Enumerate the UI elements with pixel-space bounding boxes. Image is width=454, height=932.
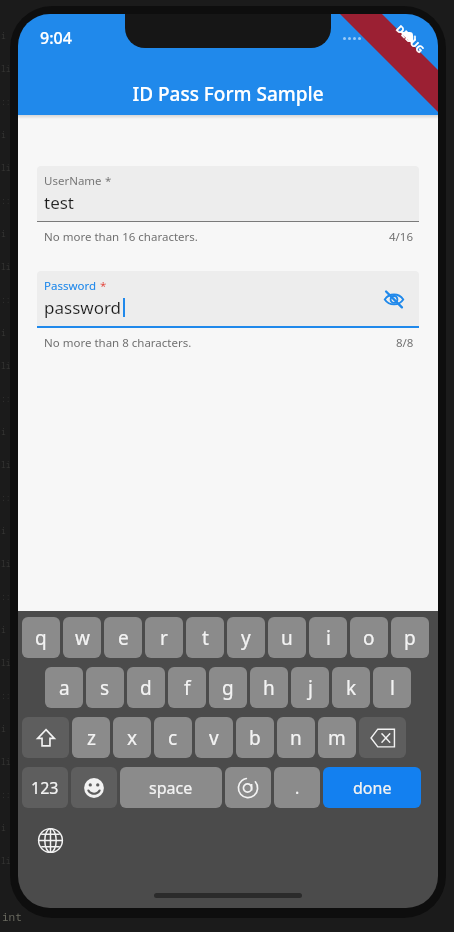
button[interactable]: d bbox=[127, 667, 165, 708]
staticText: i bbox=[1, 30, 6, 41]
staticText: DEBUG bbox=[393, 22, 428, 56]
staticText: Password bbox=[44, 278, 97, 294]
staticText: int bbox=[2, 909, 22, 924]
staticText: . bbox=[295, 777, 300, 799]
staticText: f bbox=[184, 675, 191, 701]
button[interactable]: b bbox=[236, 717, 274, 758]
button[interactable]: s bbox=[86, 667, 124, 708]
button[interactable]: h bbox=[250, 667, 288, 708]
staticText: i bbox=[1, 228, 6, 239]
button[interactable]: space bbox=[120, 767, 222, 808]
staticText: t bbox=[202, 625, 209, 651]
staticText: 8/8 bbox=[396, 335, 414, 351]
staticText: li bbox=[1, 162, 11, 173]
button[interactable]: r bbox=[145, 617, 183, 658]
staticText: d bbox=[140, 675, 152, 701]
staticText: :: bbox=[1, 195, 11, 206]
button[interactable]: Emoji bbox=[71, 767, 117, 808]
button[interactable]: At sign bbox=[225, 767, 271, 808]
button[interactable]: 123 bbox=[22, 767, 68, 808]
staticText: space bbox=[149, 777, 193, 799]
staticText: y bbox=[241, 625, 251, 651]
button[interactable]: x bbox=[113, 717, 151, 758]
button[interactable]: Hide password bbox=[379, 284, 409, 314]
button[interactable]: c bbox=[154, 717, 192, 758]
staticText: i bbox=[1, 327, 6, 338]
staticText: g bbox=[222, 675, 234, 701]
staticText: :: bbox=[1, 690, 11, 701]
staticText: b bbox=[249, 725, 261, 751]
button[interactable]: Shift bbox=[22, 717, 69, 758]
button[interactable]: done bbox=[323, 767, 421, 808]
staticText: :: bbox=[1, 789, 11, 800]
staticText: test bbox=[44, 191, 75, 214]
staticText: ID Pass Form Sample bbox=[132, 81, 324, 107]
staticText: li bbox=[1, 657, 11, 668]
staticText: i bbox=[1, 723, 6, 734]
staticText: o bbox=[363, 625, 375, 651]
staticText: li bbox=[1, 261, 11, 272]
staticText: i bbox=[1, 426, 6, 437]
staticText: :: bbox=[1, 591, 11, 602]
staticText: x bbox=[127, 725, 138, 751]
button[interactable]: n bbox=[277, 717, 315, 758]
staticText: i bbox=[1, 525, 6, 536]
staticText: s bbox=[100, 675, 110, 701]
staticText: m bbox=[328, 725, 346, 751]
button[interactable]: e bbox=[104, 617, 142, 658]
button[interactable]: y bbox=[227, 617, 265, 658]
staticText: li bbox=[1, 855, 11, 866]
button[interactable]: i bbox=[309, 617, 347, 658]
staticText: :: bbox=[1, 393, 11, 404]
button[interactable]: m bbox=[318, 717, 356, 758]
staticText: :: bbox=[1, 96, 11, 107]
staticText: r bbox=[160, 625, 168, 651]
staticText: h bbox=[263, 675, 275, 701]
button[interactable]: w bbox=[63, 617, 101, 658]
staticText: v bbox=[209, 725, 219, 751]
button[interactable]: q bbox=[22, 617, 60, 658]
staticText: i bbox=[326, 625, 331, 651]
button[interactable]: Password bbox=[37, 271, 419, 326]
button[interactable]: Change keyboard language bbox=[32, 822, 68, 858]
button[interactable]: g bbox=[209, 667, 247, 708]
staticText: li bbox=[1, 63, 11, 74]
button[interactable]: p bbox=[391, 617, 429, 658]
staticText: :: bbox=[1, 492, 11, 503]
staticText: q bbox=[35, 625, 47, 651]
button[interactable]: j bbox=[291, 667, 329, 708]
button[interactable]: o bbox=[350, 617, 388, 658]
button[interactable]: Backspace bbox=[359, 717, 406, 758]
staticText: p bbox=[404, 625, 416, 651]
button[interactable]: UserName bbox=[37, 166, 419, 221]
staticText: li bbox=[1, 558, 11, 569]
staticText: UserName bbox=[44, 173, 102, 189]
staticText: No more than 8 characters. bbox=[44, 335, 192, 351]
button[interactable]: z bbox=[72, 717, 110, 758]
staticText: * bbox=[105, 173, 112, 189]
button[interactable]: l bbox=[373, 667, 411, 708]
staticText: li bbox=[1, 756, 11, 767]
button[interactable]: u bbox=[268, 617, 306, 658]
staticText: done bbox=[353, 777, 392, 799]
button[interactable]: t bbox=[186, 617, 224, 658]
staticText: 123 bbox=[31, 777, 59, 799]
button[interactable]: . bbox=[274, 767, 320, 808]
staticText: 4/16 bbox=[389, 229, 414, 245]
staticText: li bbox=[1, 360, 11, 371]
staticText: :: bbox=[1, 294, 11, 305]
staticText: z bbox=[87, 725, 96, 751]
staticText: i bbox=[1, 822, 6, 833]
staticText: i bbox=[1, 624, 6, 635]
button[interactable]: a bbox=[45, 667, 83, 708]
button[interactable]: f bbox=[168, 667, 206, 708]
staticText: c bbox=[168, 725, 178, 751]
staticText: li bbox=[1, 459, 11, 470]
button[interactable]: k bbox=[332, 667, 370, 708]
staticText: * bbox=[100, 278, 107, 294]
staticText: w bbox=[75, 625, 90, 651]
button[interactable]: v bbox=[195, 717, 233, 758]
staticText: k bbox=[346, 675, 357, 701]
staticText: j bbox=[308, 675, 313, 701]
staticText: e bbox=[118, 625, 129, 651]
